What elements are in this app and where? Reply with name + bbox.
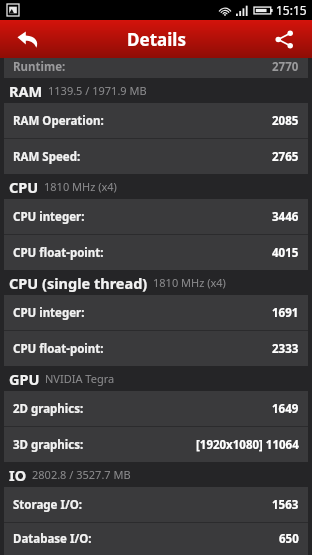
staticText: 2770 — [272, 59, 299, 75]
staticText: 2333 — [272, 341, 299, 357]
staticText: 15:15 — [276, 2, 307, 18]
staticText: CPU (single thread) — [9, 273, 148, 293]
staticText: Runtime: — [13, 59, 66, 75]
button[interactable]: CPU float-point: — [4, 235, 308, 270]
staticText: Database I/O: — [13, 531, 92, 547]
staticText: RAM Speed: — [13, 149, 81, 165]
button[interactable]: Share — [256, 20, 312, 58]
staticText: 2085 — [272, 113, 299, 129]
button[interactable]: RAM Operation: — [4, 103, 308, 138]
button[interactable]: Back — [0, 20, 56, 58]
staticText: 2765 — [272, 149, 299, 165]
staticText: CPU float-point: — [13, 245, 104, 261]
staticText: RAM Operation: — [13, 113, 104, 129]
staticText: 2802.8 / 3527.7 MB — [32, 467, 131, 482]
button[interactable]: Storage I/O: — [4, 487, 308, 522]
staticText: 1139.5 / 1971.9 MB — [48, 83, 147, 98]
staticText: GPU — [9, 369, 40, 389]
staticText: 3D graphics: — [13, 437, 84, 453]
button[interactable]: 2D graphics: — [4, 391, 308, 426]
staticText: Details — [127, 28, 186, 51]
button[interactable]: Runtime: — [4, 58, 308, 78]
staticText: CPU — [9, 177, 39, 197]
staticText: IO — [9, 465, 27, 485]
button[interactable]: Database I/O: — [4, 523, 308, 555]
staticText: Storage I/O: — [13, 497, 83, 513]
button[interactable]: 3D graphics: — [4, 427, 308, 462]
staticText: 1691 — [272, 305, 299, 321]
staticText: 4015 — [272, 245, 299, 261]
staticText: 1563 — [272, 497, 299, 513]
staticText: CPU integer: — [13, 305, 85, 321]
staticText: 1649 — [272, 401, 299, 417]
staticText: 650 — [279, 531, 299, 547]
staticText: RAM — [9, 81, 43, 101]
staticText: NVIDIA Tegra — [45, 371, 115, 386]
button[interactable]: CPU integer: — [4, 295, 308, 330]
staticText: CPU float-point: — [13, 341, 104, 357]
staticText: 3446 — [272, 209, 299, 225]
staticText: 2D graphics: — [13, 401, 84, 417]
button[interactable]: CPU integer: — [4, 199, 308, 234]
staticText: 1810 MHz (x4) — [153, 275, 226, 290]
staticText: CPU integer: — [13, 209, 85, 225]
button[interactable]: RAM Speed: — [4, 139, 308, 174]
staticText: 1810 MHz (x4) — [44, 179, 117, 194]
button[interactable]: CPU float-point: — [4, 331, 308, 366]
staticText: [1920x1080] 11064 — [196, 437, 299, 453]
